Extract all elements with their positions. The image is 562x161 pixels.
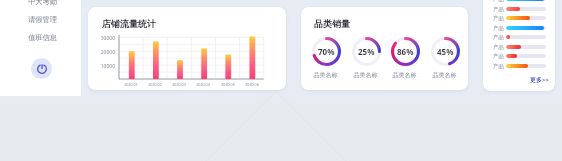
button[interactable]: 产品 <box>483 51 555 61</box>
staticText: 品类名称 <box>351 71 380 80</box>
staticText: 2020.03 <box>167 82 191 89</box>
staticText: 2020.01 <box>119 82 143 89</box>
staticText: 请假管理 <box>28 15 57 24</box>
staticText: 产品 <box>493 44 504 51</box>
staticText: 2020.06 <box>240 82 264 89</box>
staticText: 品类名称 <box>430 71 459 80</box>
button[interactable]: 值班信息 <box>10 29 74 45</box>
staticText: 86% <box>397 46 414 57</box>
staticText: 产品 <box>493 63 504 70</box>
staticText: 产品 <box>493 6 504 13</box>
staticText: 产品 <box>493 53 504 60</box>
button[interactable]: 更多>> <box>530 76 549 84</box>
staticText: 品类名称 <box>390 71 419 80</box>
staticText: 产品 <box>493 0 504 3</box>
staticText: 25% <box>358 46 375 57</box>
staticText: 店铺流量统计 <box>102 18 156 29</box>
staticText: 品类名称 <box>311 71 340 80</box>
button[interactable]: 请假管理 <box>10 11 74 27</box>
staticText: 产品 <box>493 34 504 41</box>
button[interactable]: 产品 <box>483 23 555 33</box>
staticText: 2020.02 <box>143 82 167 89</box>
staticText: 品类销量 <box>314 18 350 29</box>
staticText: 70% <box>318 46 335 57</box>
staticText: 45% <box>437 46 454 57</box>
staticText: 2020.05 <box>216 82 240 89</box>
staticText: 20000 <box>94 49 115 56</box>
staticText: 2020.04 <box>191 82 215 89</box>
button[interactable]: 产品 <box>483 42 555 52</box>
staticText: 值班信息 <box>28 33 57 42</box>
button[interactable]: 产品 <box>483 32 555 42</box>
button[interactable]: 产品 <box>483 0 555 4</box>
staticText: 产品 <box>493 15 504 22</box>
staticText: 产品 <box>493 25 504 32</box>
staticText: 10000 <box>94 63 115 70</box>
button[interactable]: 产品 <box>483 13 555 23</box>
staticText: 更多>> <box>530 76 549 84</box>
staticText: 30000 <box>94 35 115 42</box>
button[interactable]: 产品 <box>483 61 555 71</box>
button[interactable]: Power <box>31 58 52 79</box>
button[interactable]: 产品 <box>483 4 555 14</box>
button[interactable]: 中大考勤 <box>10 0 74 9</box>
staticText: 中大考勤 <box>28 0 57 6</box>
